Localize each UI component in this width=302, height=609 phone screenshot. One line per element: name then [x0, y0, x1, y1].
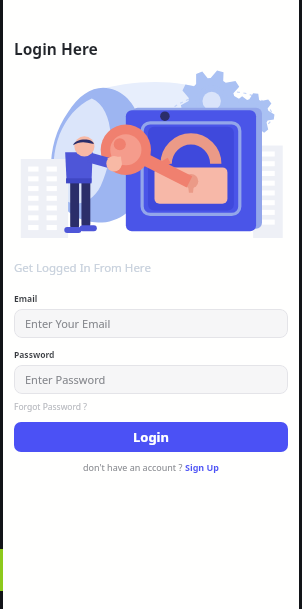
button[interactable]: Enter Password	[14, 365, 288, 394]
staticText: Login	[133, 428, 169, 446]
staticText: Password	[14, 349, 55, 361]
button[interactable]: Login	[14, 422, 288, 452]
button[interactable]: Sign Up	[185, 461, 220, 473]
button[interactable]: Enter Your Email	[14, 309, 288, 338]
staticText: Forgot Password ?	[14, 401, 87, 413]
staticText: Sign Up	[185, 461, 220, 473]
staticText: Email	[14, 293, 38, 305]
button[interactable]: Forgot Password ?	[14, 401, 87, 413]
staticText: don't have an account ?	[83, 461, 185, 473]
staticText: Enter Your Email	[25, 316, 111, 331]
staticText: Login Here	[14, 38, 98, 59]
staticText: Get Logged In From Here	[14, 260, 151, 276]
staticText: Enter Password	[25, 372, 106, 387]
